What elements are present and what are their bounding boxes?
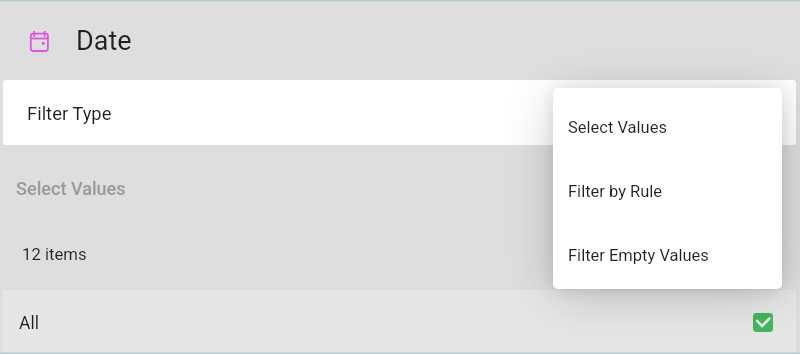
button[interactable]: All selected <box>753 313 773 332</box>
button[interactable]: Date <box>0 2 800 80</box>
button[interactable]: Filter Empty Values <box>553 221 782 285</box>
button[interactable]: All <box>3 290 796 353</box>
button[interactable]: Filter Type <box>3 80 796 145</box>
staticText: Select Values <box>16 178 126 199</box>
button[interactable]: Filter by Rule <box>553 157 782 221</box>
other: Date <box>30 31 50 52</box>
staticText: Filter by Rule <box>568 182 663 201</box>
staticText: Date <box>76 25 132 57</box>
staticText: 12 items <box>22 245 87 265</box>
staticText: All <box>19 313 39 334</box>
staticText: Filter Type <box>27 103 112 125</box>
button[interactable]: Select Values <box>553 93 782 157</box>
staticText: Filter Empty Values <box>568 246 709 265</box>
staticText: Select Values <box>568 118 667 137</box>
